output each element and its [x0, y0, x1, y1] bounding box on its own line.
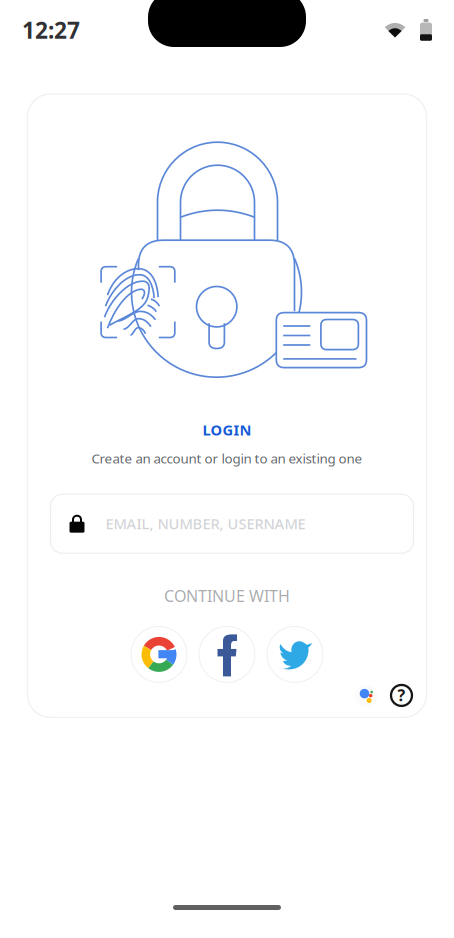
staticText: 12:27 — [22, 15, 80, 45]
button[interactable]: Continue with Facebook — [199, 626, 255, 682]
button[interactable]: Continue with Twitter — [267, 626, 323, 682]
staticText: ? — [397, 684, 405, 705]
button[interactable]: EMAIL, NUMBER, USERNAME — [40, 494, 413, 553]
button[interactable]: Google Assistant — [355, 684, 377, 706]
button[interactable]: Continue with Google — [131, 626, 187, 682]
staticText: LOGIN — [202, 420, 251, 439]
staticText: CONTINUE WITH — [164, 585, 290, 606]
button[interactable]: Help — [390, 684, 412, 706]
staticText: Create an account or login to an existin… — [91, 449, 362, 467]
staticText: EMAIL, NUMBER, USERNAME — [105, 514, 305, 533]
